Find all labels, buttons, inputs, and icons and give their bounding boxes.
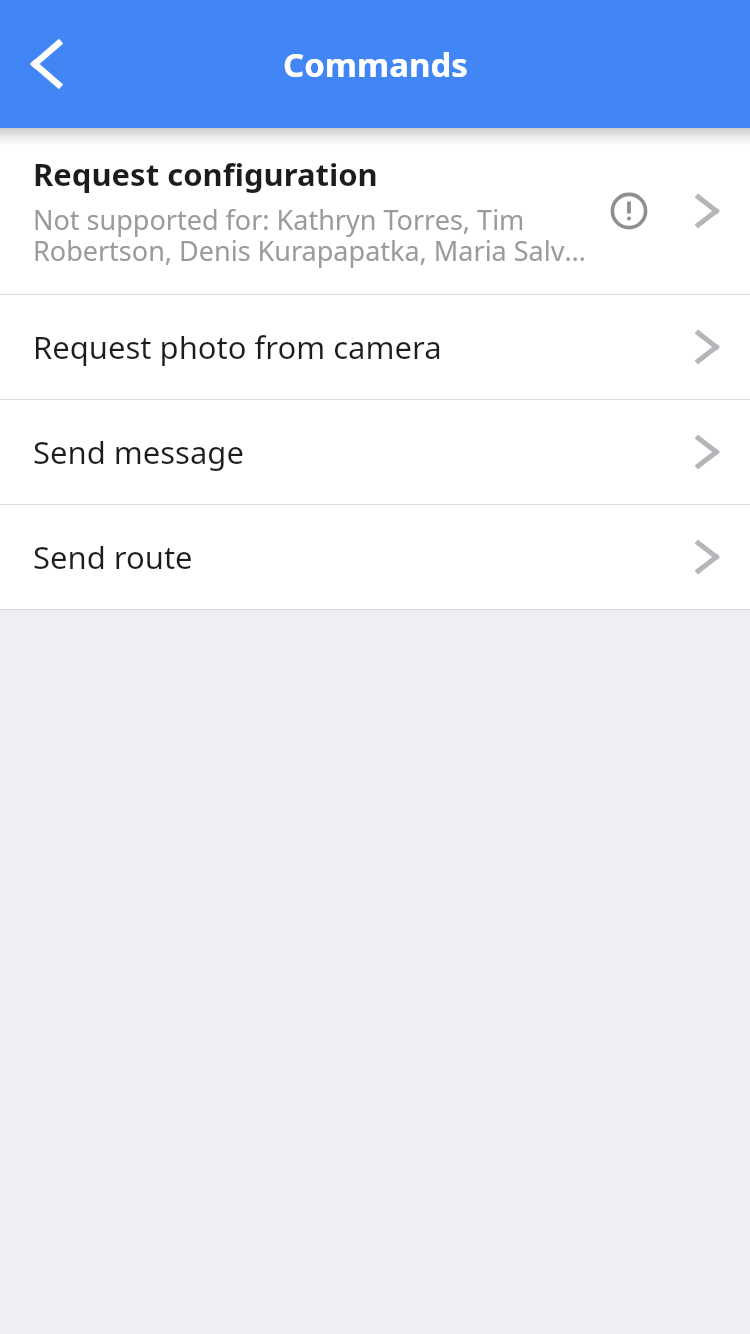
staticText: Send route — [33, 536, 696, 578]
button[interactable]: Request photo from camera — [0, 295, 750, 399]
button[interactable]: Send route — [0, 505, 750, 609]
staticText: Commands — [283, 42, 468, 87]
staticText: Send message — [33, 431, 696, 473]
button[interactable]: Back — [12, 30, 80, 98]
button[interactable]: Request configuration — [0, 128, 750, 294]
button[interactable]: Send message — [0, 400, 750, 504]
staticText: Request photo from camera — [33, 326, 696, 368]
staticText: Not supported for: Kathryn Torres, Tim R… — [33, 201, 598, 269]
staticText: Request configuration — [33, 153, 378, 195]
